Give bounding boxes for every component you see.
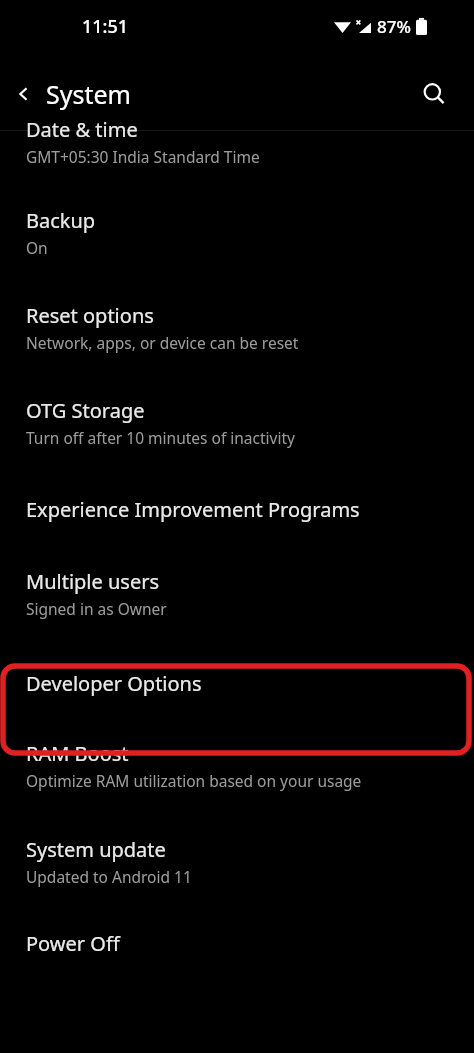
staticText: Turn off after 10 minutes of inactivity <box>26 427 295 448</box>
button[interactable]: Reset options <box>0 284 474 379</box>
staticText: Updated to Android 11 <box>26 866 192 887</box>
staticText: Power Off <box>26 930 120 957</box>
button[interactable]: Back <box>0 70 48 118</box>
staticText: Experience Improvement Programs <box>26 496 360 523</box>
staticText: Network, apps, or device can be reset <box>26 332 299 353</box>
staticText: System <box>46 77 131 111</box>
button[interactable]: RAM Boost <box>0 730 474 818</box>
button[interactable]: Power Off <box>0 914 474 994</box>
staticText: Multiple users <box>26 568 160 595</box>
staticText: 11:51 <box>82 14 129 39</box>
staticText: OTG Storage <box>26 397 145 424</box>
button[interactable]: Backup <box>0 189 474 284</box>
staticText: Optimize RAM utilization based on your u… <box>26 770 362 791</box>
staticText: On <box>26 237 48 258</box>
button[interactable]: Developer Options <box>0 640 474 730</box>
staticText: GMT+05:30 India Standard Time <box>26 146 260 167</box>
staticText: Date & time <box>26 116 138 143</box>
button[interactable]: System update <box>0 818 474 914</box>
staticText: 87% <box>377 15 411 38</box>
button[interactable]: Search <box>413 73 455 115</box>
staticText: RAM Boost <box>26 740 129 767</box>
staticText: Backup <box>26 207 96 234</box>
button[interactable]: Experience Improvement Programs <box>0 474 474 550</box>
staticText: System update <box>26 836 166 863</box>
button[interactable]: OTG Storage <box>0 379 474 474</box>
button[interactable]: Multiple users <box>0 550 474 640</box>
staticText: Reset options <box>26 302 154 329</box>
staticText: Signed in as Owner <box>26 598 167 619</box>
staticText: Developer Options <box>26 670 202 697</box>
